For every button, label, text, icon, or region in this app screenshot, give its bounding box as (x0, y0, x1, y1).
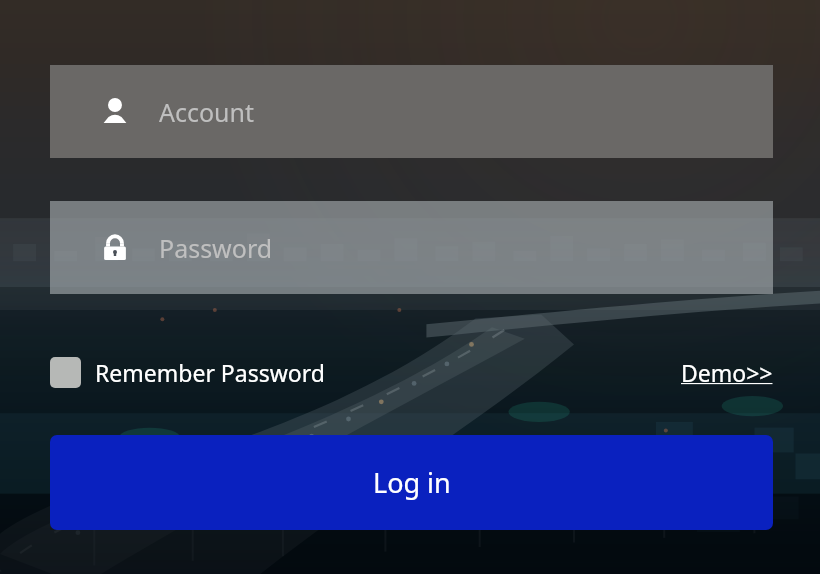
button[interactable]: Demo>> (681, 357, 773, 388)
button[interactable]: Remember Password (50, 357, 325, 388)
button[interactable]: Account (50, 65, 773, 158)
staticText: Demo>> (681, 357, 773, 388)
button[interactable]: Password (50, 201, 773, 294)
staticText: Log in (373, 464, 451, 501)
staticText: Remember Password (95, 357, 325, 388)
button[interactable]: Log in (50, 435, 773, 530)
staticText: Account (159, 95, 255, 129)
staticText: Password (159, 231, 273, 265)
